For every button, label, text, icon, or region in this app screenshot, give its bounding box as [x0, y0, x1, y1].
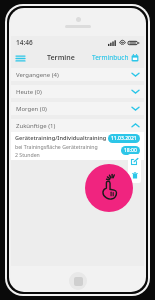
staticText: Zukünftige (1)	[16, 122, 56, 130]
button[interactable]: Menu	[16, 51, 30, 65]
button[interactable]: Morgen (0)	[11, 102, 144, 115]
staticText: Heute (0)	[16, 88, 42, 96]
button[interactable]: Gerätetraining/Individualtraining	[11, 132, 144, 160]
staticText: Termine	[47, 53, 75, 63]
button[interactable]: Edit	[129, 156, 140, 167]
staticText: Terminbuch	[92, 53, 129, 62]
staticText: Vergangene (4)	[16, 71, 59, 79]
button[interactable]: Terminbuch	[92, 53, 139, 62]
staticText: 18:00	[124, 147, 137, 154]
other: Tap gesture hint	[85, 164, 133, 212]
staticText: Morgen (0)	[16, 105, 47, 113]
staticText: Gerätetraining/Individualtraining	[15, 134, 107, 142]
button[interactable]: Zukünftige (1)	[11, 119, 144, 132]
button[interactable]: Delete	[129, 170, 140, 181]
button[interactable]: Vergangene (4)	[11, 68, 144, 81]
staticText: 2 Stunden	[15, 151, 40, 158]
staticText: 11.03.2021	[111, 135, 137, 142]
button[interactable]: Heute (0)	[11, 85, 144, 98]
staticText: 14:46	[16, 38, 33, 47]
staticText: bei Trainingsfläche Gerätetraining	[15, 143, 98, 150]
